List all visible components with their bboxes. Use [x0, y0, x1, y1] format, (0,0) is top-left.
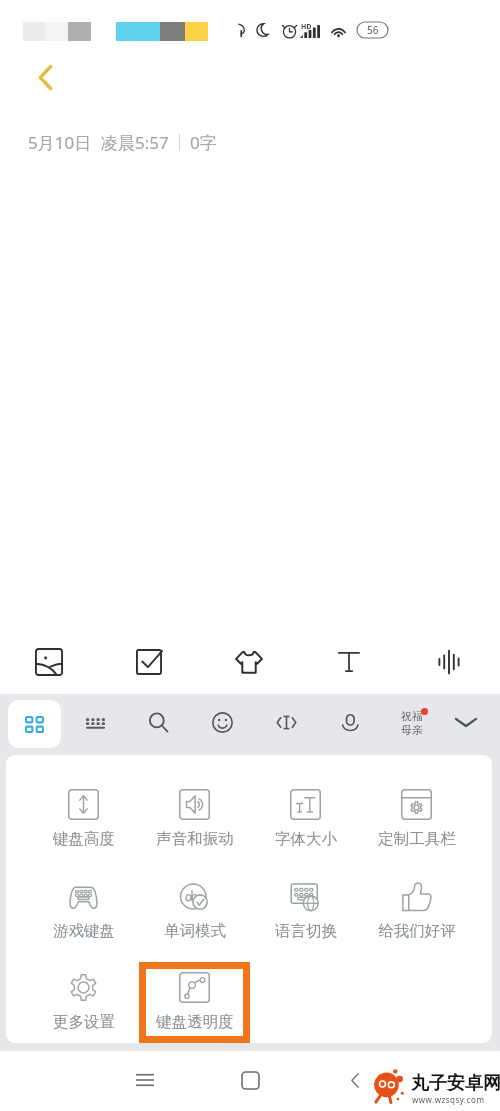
- staticText: 键盘透明度: [156, 1012, 234, 1032]
- button[interactable]: Voice: [425, 638, 473, 686]
- button[interactable]: Keyboard: [73, 700, 117, 744]
- staticText: 声音和振动: [156, 829, 234, 849]
- button[interactable]: 游戏键盘: [28, 871, 139, 952]
- staticText: 母亲: [401, 723, 423, 737]
- staticText: 祝福: [401, 709, 423, 723]
- staticText: 语言切换: [275, 921, 337, 941]
- button[interactable]: Voice input: [328, 700, 372, 744]
- staticText: 56: [367, 23, 379, 37]
- button[interactable]: 单词模式: [139, 871, 250, 952]
- button[interactable]: Home: [230, 1060, 270, 1100]
- staticText: 字体大小: [275, 829, 337, 849]
- button[interactable]: 给我们好评: [361, 871, 472, 952]
- button[interactable]: Recents: [125, 1060, 165, 1100]
- button[interactable]: Style: [225, 638, 273, 686]
- button[interactable]: Cursor: [264, 700, 308, 744]
- button[interactable]: 字体大小: [250, 779, 361, 860]
- button[interactable]: Checklist: [125, 638, 173, 686]
- button[interactable]: Back: [22, 54, 68, 100]
- staticText: 5月10日: [28, 131, 92, 154]
- button[interactable]: Toolbox: [8, 700, 61, 748]
- staticText: 凌晨5:57: [101, 131, 169, 154]
- button[interactable]: Back: [335, 1060, 375, 1100]
- staticText: 给我们好评: [378, 921, 456, 941]
- button[interactable]: Insert image: [25, 638, 73, 686]
- staticText: 游戏键盘: [53, 921, 115, 941]
- button[interactable]: 语言切换: [250, 871, 361, 952]
- button[interactable]: 键盘高度: [28, 779, 139, 860]
- staticText: 单词模式: [164, 921, 226, 941]
- button[interactable]: Collapse: [444, 700, 488, 744]
- staticText: HD: [301, 22, 312, 32]
- staticText: 更多设置: [53, 1012, 115, 1032]
- staticText: 定制工具栏: [378, 829, 456, 849]
- button[interactable]: Text format: [325, 638, 373, 686]
- staticText: www.wzsqsy.com: [412, 1094, 485, 1105]
- button[interactable]: 更多设置: [28, 962, 139, 1043]
- button[interactable]: 声音和振动: [139, 779, 250, 860]
- button[interactable]: 键盘透明度: [139, 962, 250, 1043]
- button[interactable]: 定制工具栏: [361, 779, 472, 860]
- button[interactable]: Search: [136, 700, 180, 744]
- staticText: 键盘高度: [53, 829, 115, 849]
- staticText: 0字: [190, 131, 217, 154]
- staticText: 丸子安卓网: [411, 1072, 500, 1095]
- button[interactable]: 祝福: [390, 700, 434, 745]
- button[interactable]: Emoji: [200, 700, 244, 744]
